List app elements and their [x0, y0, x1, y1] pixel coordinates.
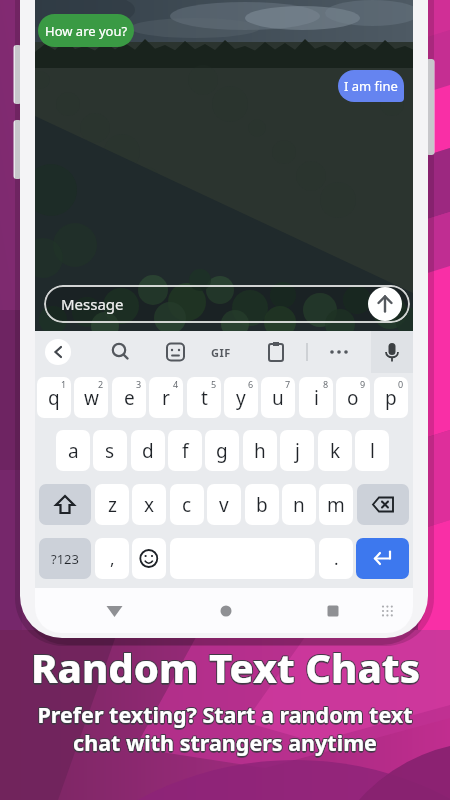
staticText: Random Text Chats — [31, 639, 420, 693]
staticText: i — [314, 385, 319, 411]
button[interactable]: t — [187, 377, 221, 418]
staticText: I am fine — [344, 77, 398, 95]
staticText: r — [162, 385, 170, 411]
staticText: Random Text Chats — [32, 640, 421, 694]
staticText: 8 — [323, 378, 329, 390]
button[interactable] — [357, 484, 409, 525]
staticText: Prefer texting? Start a random text chat… — [37, 699, 413, 756]
button[interactable] — [39, 484, 91, 525]
staticText: Random Text Chats — [31, 640, 420, 694]
staticText: o — [347, 385, 359, 411]
staticText: Prefer texting? Start a random text chat… — [37, 702, 413, 759]
staticText: 4 — [173, 378, 179, 390]
staticText: , — [110, 547, 115, 570]
button[interactable] — [368, 287, 402, 321]
staticText: 7 — [285, 378, 291, 390]
button[interactable]: z — [95, 484, 129, 525]
staticText: e — [124, 385, 135, 411]
staticText: t — [201, 385, 208, 411]
staticText: k — [330, 438, 341, 464]
staticText: n — [293, 492, 305, 518]
staticText: u — [272, 385, 284, 411]
button[interactable]: i — [299, 377, 333, 418]
staticText: f — [182, 438, 189, 464]
button[interactable]: m — [319, 484, 353, 525]
button[interactable]: Message — [44, 285, 410, 323]
staticText: d — [142, 438, 154, 464]
button[interactable]: GIF — [203, 331, 239, 373]
button[interactable]: a — [56, 430, 90, 471]
button[interactable]: g — [205, 430, 239, 471]
button[interactable]: s — [93, 430, 127, 471]
staticText: q — [48, 385, 60, 411]
staticText: Prefer texting? Start a random text chat… — [36, 701, 412, 758]
button[interactable]: y — [224, 377, 258, 418]
staticText: p — [385, 385, 397, 411]
staticText: 2 — [98, 378, 104, 390]
staticText: Random Text Chats — [30, 641, 419, 695]
button[interactable]: o — [336, 377, 370, 418]
staticText: Prefer texting? Start a random text chat… — [38, 700, 414, 757]
button[interactable] — [371, 331, 413, 373]
button[interactable]: I am fine — [338, 70, 404, 102]
staticText: j — [295, 438, 300, 464]
button[interactable] — [313, 593, 363, 629]
button[interactable]: x — [132, 484, 166, 525]
button[interactable]: r — [149, 377, 183, 418]
staticText: Prefer texting? Start a random text chat… — [36, 699, 412, 756]
staticText: y — [236, 385, 246, 411]
staticText: g — [216, 438, 228, 464]
button[interactable]: d — [131, 430, 165, 471]
button[interactable]: l — [355, 430, 389, 471]
staticText: Random Text Chats — [32, 641, 421, 695]
button[interactable] — [201, 593, 251, 629]
staticText: x — [144, 492, 155, 518]
button[interactable]: e — [112, 377, 146, 418]
staticText: 6 — [248, 378, 254, 390]
staticText: Prefer texting? Start a random text chat… — [38, 699, 414, 756]
staticText: Random Text Chats — [31, 642, 420, 696]
button[interactable]: f — [168, 430, 202, 471]
button[interactable]: v — [207, 484, 241, 525]
button[interactable]: b — [245, 484, 279, 525]
staticText: How are you? — [45, 22, 128, 40]
staticText: 0 — [398, 378, 404, 390]
staticText: m — [327, 492, 345, 518]
staticText: h — [254, 438, 266, 464]
staticText: w — [84, 385, 99, 411]
staticText: Message — [61, 294, 124, 314]
button[interactable] — [356, 538, 409, 579]
staticText: 5 — [211, 378, 217, 390]
staticText: 1 — [61, 378, 67, 390]
button[interactable]: h — [243, 430, 277, 471]
staticText: 3 — [136, 378, 142, 390]
staticText: Random Text Chats — [30, 640, 419, 694]
button[interactable]: w — [74, 377, 108, 418]
staticText: Random Text Chats — [30, 639, 419, 693]
staticText: v — [219, 492, 229, 518]
staticText: z — [108, 492, 117, 518]
staticText: a — [68, 438, 79, 464]
staticText: Prefer texting? Start a random text chat… — [38, 701, 414, 758]
button[interactable]: p — [374, 377, 408, 418]
button[interactable]: k — [318, 430, 352, 471]
button[interactable]: , — [95, 538, 129, 579]
button[interactable]: q — [37, 377, 71, 418]
staticText: c — [182, 492, 192, 518]
button[interactable] — [132, 538, 166, 579]
staticText: GIF — [211, 345, 231, 360]
staticText: ?123 — [51, 550, 79, 568]
button[interactable]: ?123 — [39, 538, 91, 579]
button[interactable]: n — [282, 484, 316, 525]
button[interactable]: c — [170, 484, 204, 525]
staticText: Random Text Chats — [32, 639, 421, 693]
button[interactable]: j — [280, 430, 314, 471]
staticText: b — [256, 492, 268, 518]
button[interactable] — [90, 593, 140, 629]
staticText: l — [370, 438, 375, 464]
button[interactable]: How are you? — [38, 14, 134, 47]
button[interactable]: . — [319, 538, 353, 579]
button[interactable]: u — [261, 377, 295, 418]
staticText: . — [334, 547, 339, 570]
